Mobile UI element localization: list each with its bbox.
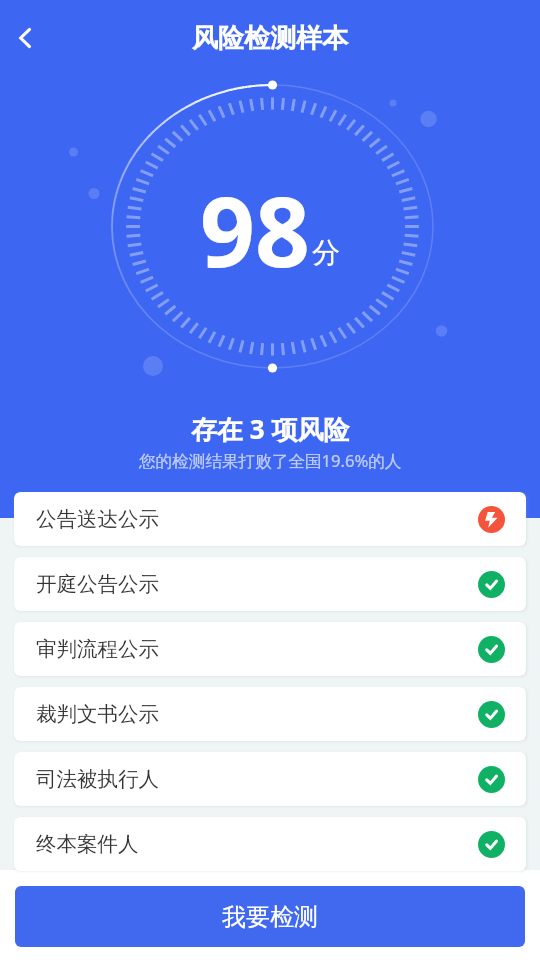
staticText: 终本案件人 [36, 831, 139, 857]
staticText: 司法被执行人 [36, 766, 159, 792]
staticText: 分 [312, 235, 340, 270]
staticText: 您的检测结果打败了全国19.6%的人 [139, 449, 402, 472]
button[interactable]: 审判流程公示 [14, 622, 526, 676]
button[interactable]: Back [4, 14, 52, 62]
button[interactable]: 终本案件人 [14, 817, 526, 871]
staticText: 风险检测样本 [192, 22, 348, 55]
staticText: 审判流程公示 [36, 636, 159, 662]
staticText: 我要检测 [222, 902, 318, 932]
button[interactable]: 公告送达公示 [14, 492, 526, 546]
button[interactable]: 裁判文书公示 [14, 687, 526, 741]
staticText: 存在 3 项风险 [191, 411, 350, 447]
button[interactable]: 我要检测 [15, 886, 525, 947]
button[interactable]: 司法被执行人 [14, 752, 526, 806]
button[interactable]: 开庭公告公示 [14, 557, 526, 611]
staticText: 98 [200, 164, 310, 295]
staticText: 开庭公告公示 [36, 571, 159, 597]
staticText: 公告送达公示 [36, 506, 159, 532]
staticText: 裁判文书公示 [36, 701, 159, 727]
